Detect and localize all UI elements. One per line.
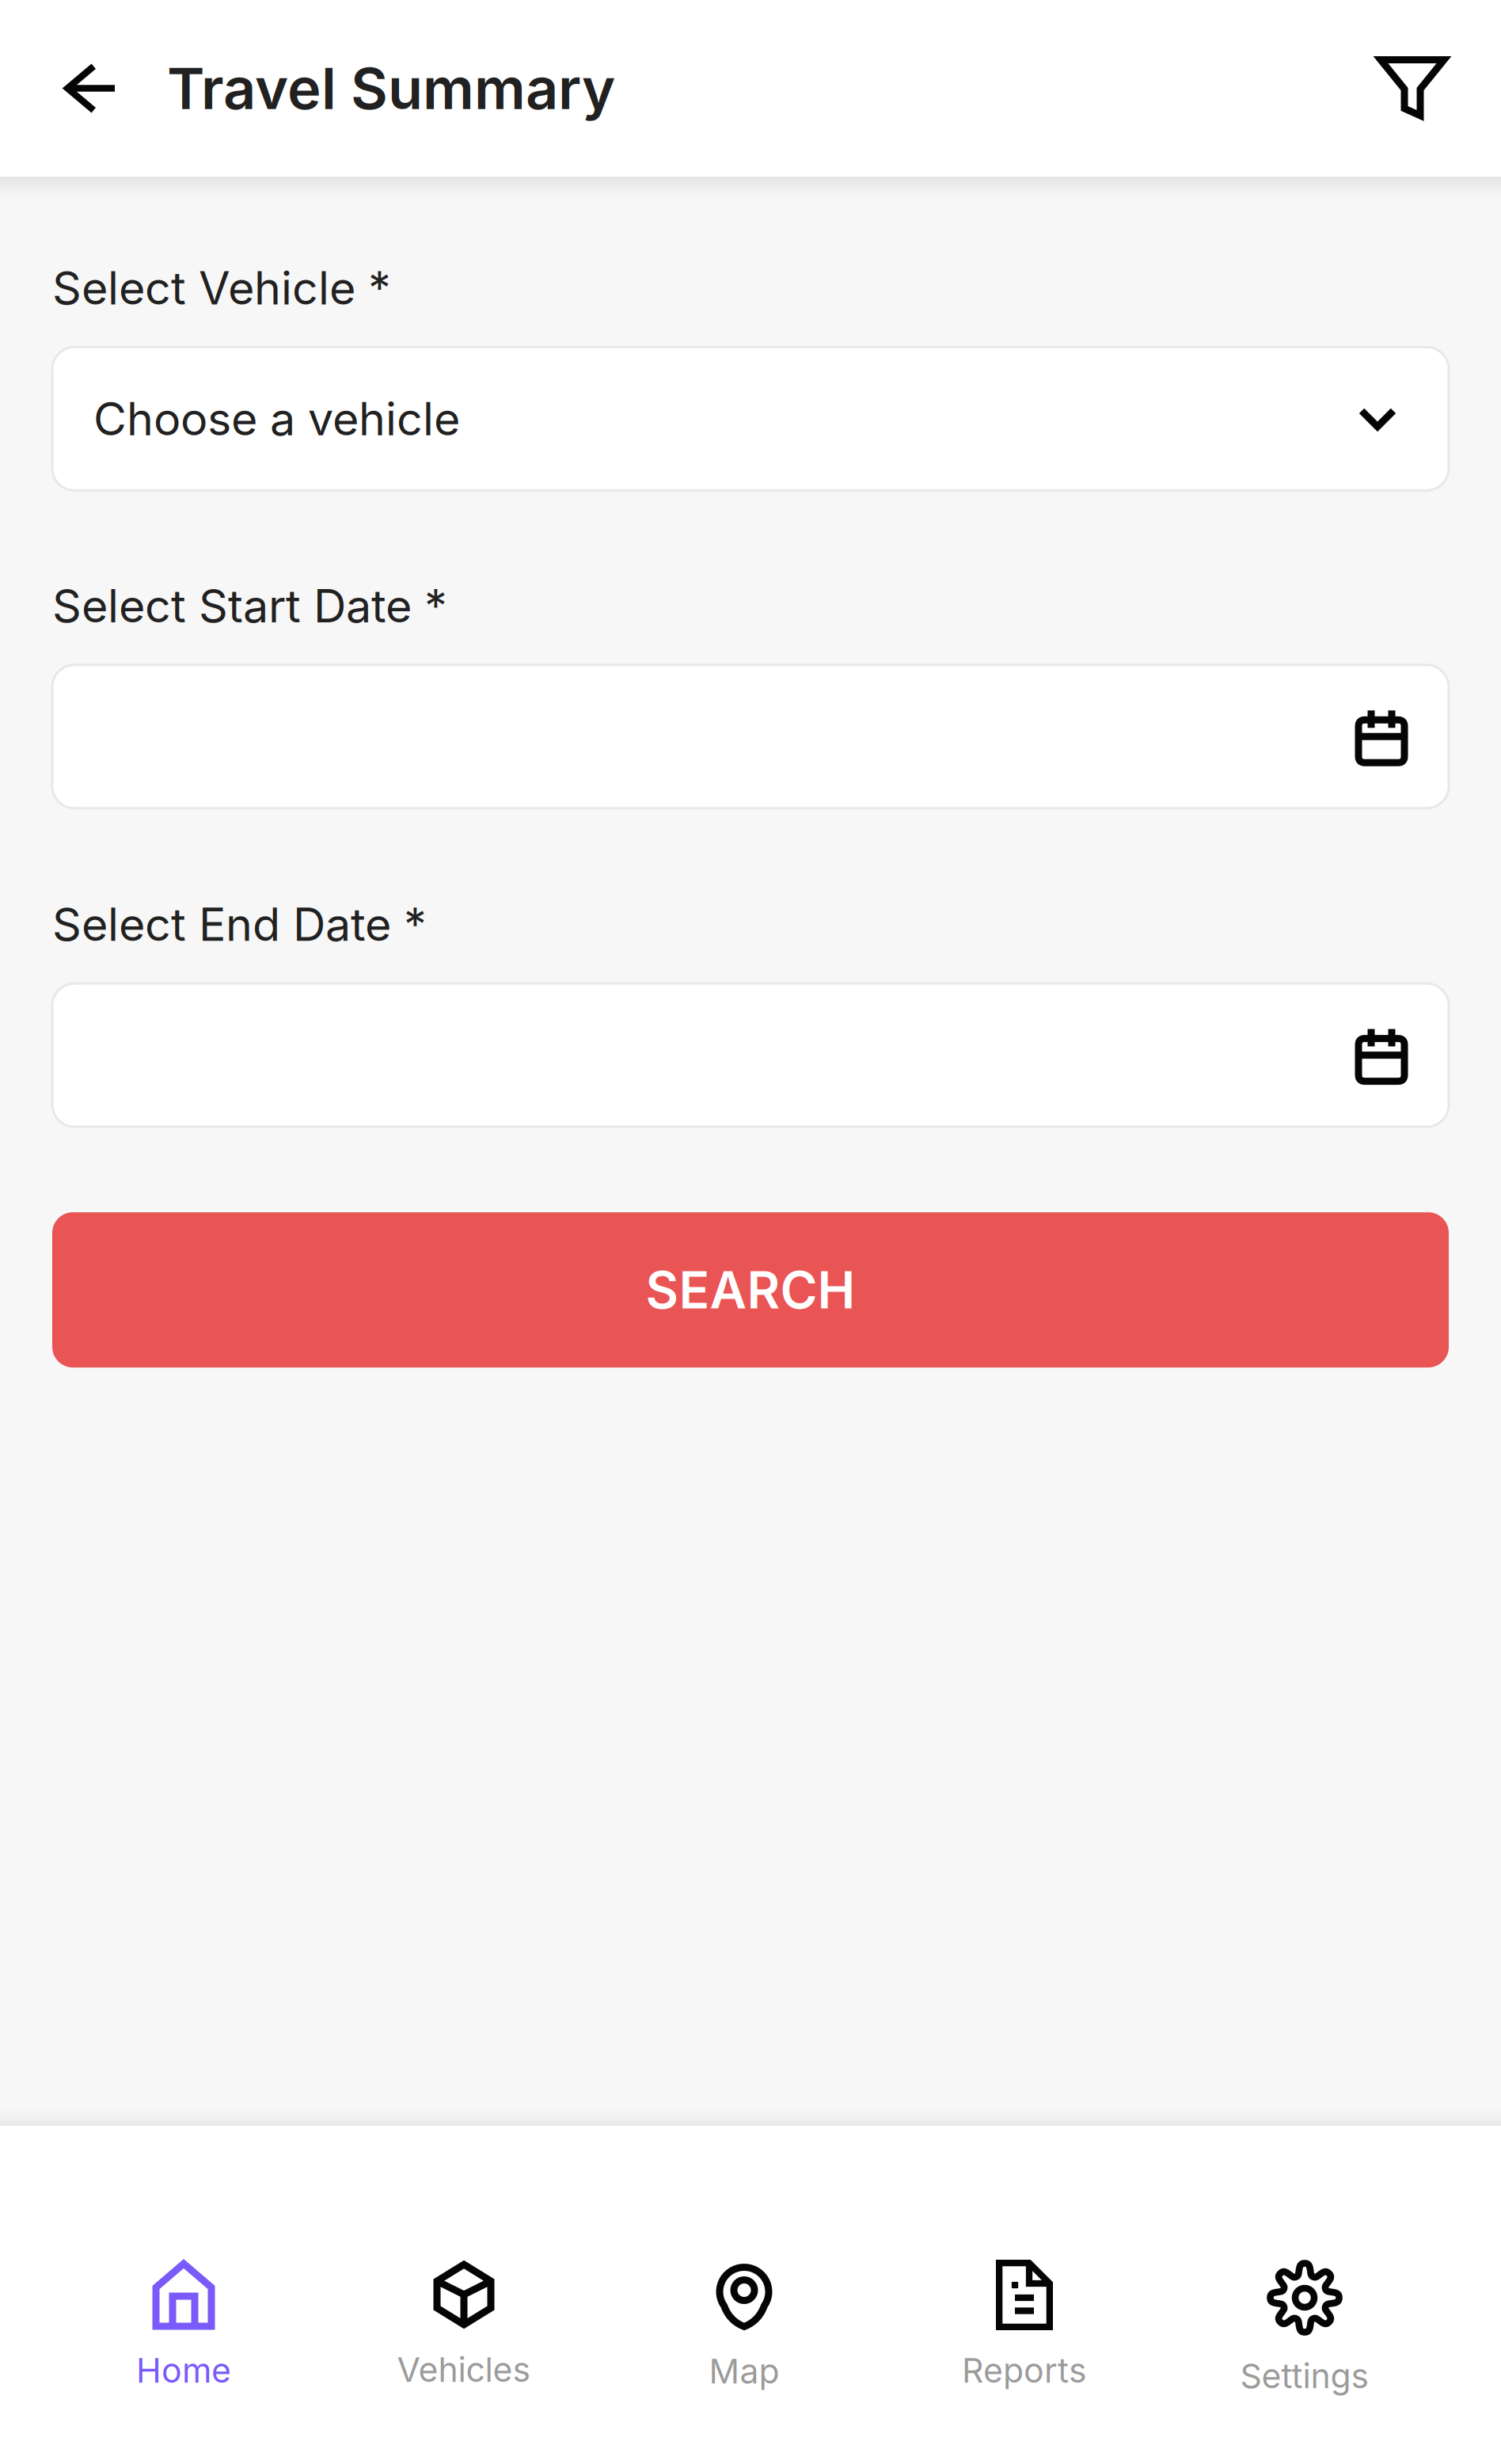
staticText: Select Vehicle * [52, 260, 391, 315]
button[interactable]: SEARCH [52, 1212, 1449, 1367]
button[interactable]: Vehicles [324, 2126, 604, 2464]
staticText: Settings [1240, 2356, 1369, 2396]
staticText: Reports [962, 2350, 1087, 2391]
staticText: Choose a vehicle [93, 391, 460, 446]
button[interactable] [52, 665, 1449, 808]
staticText: Select Start Date * [52, 578, 447, 633]
staticText: Map [709, 2351, 779, 2392]
button[interactable] [52, 983, 1449, 1127]
button[interactable]: Choose a vehicle [52, 347, 1449, 490]
button[interactable]: Settings [1165, 2126, 1445, 2464]
staticText: Home [136, 2350, 231, 2391]
button[interactable]: Back [0, 31, 115, 145]
button[interactable]: Home [44, 2126, 324, 2464]
staticText: SEARCH [646, 1259, 855, 1321]
button[interactable]: Map [604, 2126, 884, 2464]
button[interactable]: Reports [884, 2126, 1165, 2464]
staticText: Vehicles [397, 2349, 531, 2390]
staticText: Travel Summary [167, 54, 615, 123]
button[interactable]: Filter [1377, 33, 1501, 144]
staticText: Select End Date * [52, 897, 427, 952]
